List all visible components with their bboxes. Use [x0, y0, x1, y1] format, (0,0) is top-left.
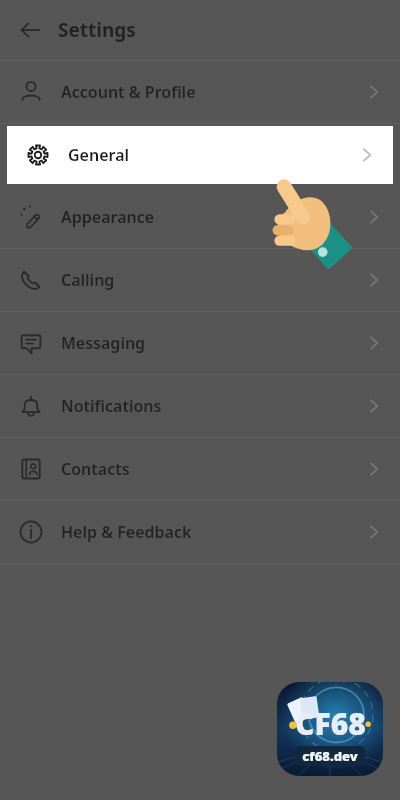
staticText: Calling [61, 269, 115, 291]
button[interactable]: Contacts [0, 438, 400, 500]
staticText: Appearance [61, 206, 155, 228]
button[interactable]: Appearance [0, 186, 400, 248]
button[interactable]: Back [6, 6, 54, 54]
staticText: Account & Profile [61, 81, 196, 103]
staticText: Settings [58, 17, 136, 43]
staticText: Help & Feedback [61, 521, 192, 543]
staticText: CF68 [295, 703, 366, 744]
button[interactable]: Calling [0, 249, 400, 311]
staticText: Notifications [61, 395, 162, 417]
button[interactable]: Messaging [0, 312, 400, 374]
button[interactable]: Notifications [0, 375, 400, 437]
button[interactable]: Help & Feedback [0, 501, 400, 563]
button[interactable]: Account & Profile [0, 61, 400, 123]
button[interactable]: General [7, 126, 393, 184]
staticText: General [68, 144, 130, 166]
staticText: cf68.dev [302, 747, 358, 765]
staticText: Messaging [61, 332, 146, 354]
staticText: Contacts [61, 458, 130, 480]
